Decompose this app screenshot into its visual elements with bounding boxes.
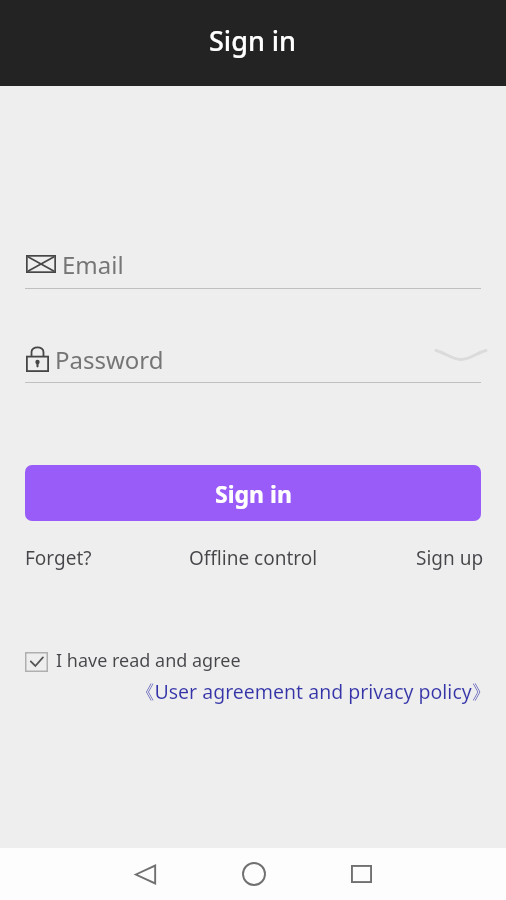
button[interactable]: Sign up xyxy=(416,545,484,571)
staticText: Forget? xyxy=(25,545,92,571)
button[interactable]: Back xyxy=(119,850,171,898)
staticText: Offline control xyxy=(189,545,318,571)
staticText: 《User agreement and privacy policy》 xyxy=(135,678,492,705)
staticText: I have read and agree xyxy=(56,648,241,673)
staticText: Sign in xyxy=(215,478,292,509)
button[interactable]: I have read and agree xyxy=(25,646,241,674)
button[interactable]: Recent apps xyxy=(335,850,387,898)
staticText: Email xyxy=(62,248,124,281)
button[interactable]: Show password xyxy=(430,332,491,376)
button[interactable]: Offline control xyxy=(189,545,318,571)
button[interactable]: Home xyxy=(228,850,280,898)
staticText: Sign up xyxy=(416,545,484,571)
button[interactable]: Forget? xyxy=(25,545,92,571)
button[interactable]: 《User agreement and privacy policy》 xyxy=(135,678,492,705)
button[interactable]: Sign in xyxy=(25,465,481,521)
staticText: Sign in xyxy=(209,22,297,59)
staticText: Password xyxy=(55,343,164,376)
